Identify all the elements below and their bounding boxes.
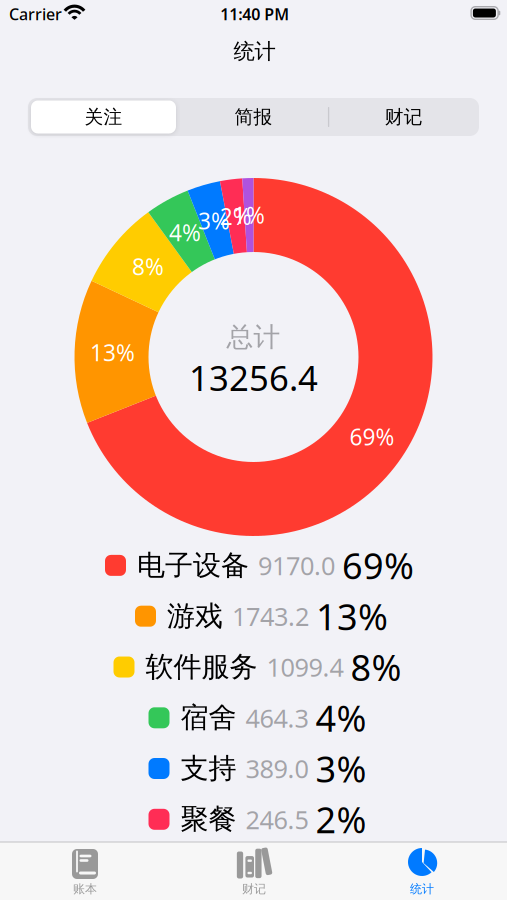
staticText: 464.3 — [245, 701, 308, 735]
staticText: 9170.0 — [258, 549, 335, 582]
button[interactable]: 简报 — [178, 98, 328, 136]
staticText: 2% — [220, 201, 252, 231]
staticText: 8% — [132, 251, 164, 281]
staticText: 宿舍 — [180, 701, 236, 735]
button[interactable]: 关注 — [28, 98, 178, 136]
staticText: 69% — [342, 541, 414, 589]
staticText: 389.0 — [245, 752, 308, 785]
button[interactable]: 财记 — [329, 98, 479, 136]
staticText: 246.5 — [245, 802, 308, 836]
staticText: 1099.4 — [266, 650, 343, 684]
staticText: Carrier — [9, 3, 62, 25]
staticText: 13% — [316, 592, 388, 640]
staticText: 2% — [315, 795, 366, 843]
staticText: 统计 — [233, 38, 275, 65]
staticText: 69% — [349, 422, 394, 452]
button[interactable]: 财记 — [194, 843, 314, 899]
staticText: 账本 — [73, 882, 97, 896]
staticText: 3% — [198, 206, 230, 236]
button[interactable]: 账本 — [25, 843, 145, 899]
staticText: 11:40 PM — [220, 3, 289, 25]
button[interactable]: 统计 — [362, 843, 482, 899]
staticText: 4% — [169, 217, 201, 248]
staticText: 财记 — [385, 105, 423, 128]
staticText: 关注 — [84, 105, 122, 128]
staticText: 聚餐 — [180, 802, 236, 836]
staticText: 4% — [315, 694, 366, 742]
staticText: 总计 — [226, 321, 280, 353]
staticText: 支持 — [180, 751, 236, 786]
staticText: 13% — [90, 337, 135, 368]
staticText: 电子设备 — [137, 548, 249, 583]
staticText: 统计 — [410, 882, 434, 896]
staticText: 软件服务 — [145, 650, 257, 684]
staticText: 1% — [233, 200, 265, 230]
staticText: 游戏 — [167, 599, 223, 633]
staticText: 财记 — [242, 882, 266, 896]
staticText: 13256.4 — [189, 354, 318, 400]
staticText: 简报 — [234, 105, 272, 128]
staticText: 3% — [315, 745, 366, 792]
staticText: 1743.2 — [232, 599, 309, 633]
staticText: 8% — [350, 643, 401, 691]
